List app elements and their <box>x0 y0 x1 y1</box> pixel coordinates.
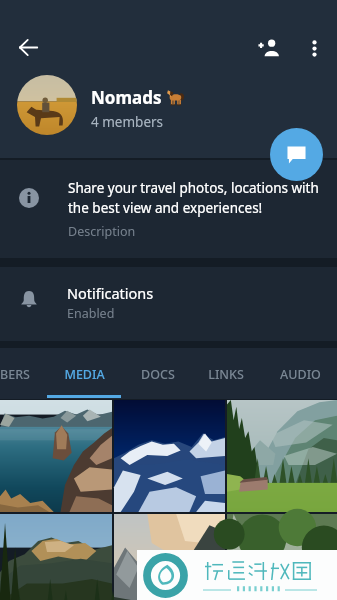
button[interactable]: Notifications <box>0 267 337 341</box>
button[interactable]: Share your travel photos, locations with… <box>0 160 337 258</box>
button[interactable]: Send message <box>270 128 323 181</box>
staticText: Enabled <box>67 305 115 322</box>
staticText: AUDIO <box>280 366 321 383</box>
staticText: Notifications <box>67 283 154 303</box>
button[interactable]: Add member <box>249 28 289 68</box>
button[interactable]: More options <box>294 28 334 68</box>
button[interactable]: Photo <box>114 400 225 512</box>
button[interactable]: DOCS <box>126 348 190 396</box>
button[interactable]: AUDIO <box>263 348 337 396</box>
button[interactable]: Back <box>8 27 48 67</box>
button[interactable]: LINKS <box>193 348 259 396</box>
button[interactable]: Photo <box>114 514 225 600</box>
staticText: MEDIA <box>64 366 105 383</box>
staticText: Share your travel photos, locations with… <box>68 179 332 217</box>
staticText: Nomads <box>91 86 162 109</box>
staticText: Description <box>68 223 136 240</box>
button[interactable]: Photo <box>227 400 337 512</box>
button[interactable]: Group photo <box>17 75 77 135</box>
button[interactable]: Photo <box>0 400 112 512</box>
staticText: DOCS <box>141 366 175 383</box>
button[interactable]: Photo <box>227 514 337 600</box>
staticText: 4 members <box>91 113 164 131</box>
button[interactable]: BERS <box>0 348 33 396</box>
button[interactable]: MEDIA <box>47 348 121 396</box>
staticText: LINKS <box>208 366 244 383</box>
staticText: BERS <box>0 366 30 383</box>
button[interactable]: Photo <box>0 514 112 600</box>
